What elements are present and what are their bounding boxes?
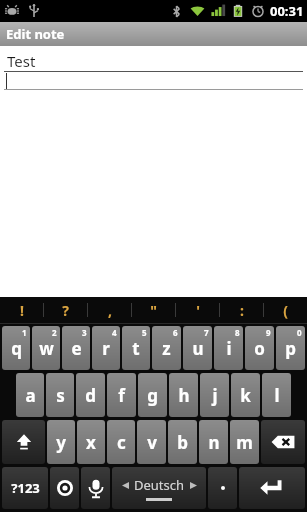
staticText: Test	[7, 51, 36, 71]
button[interactable]: n	[199, 420, 228, 464]
staticText: o	[254, 337, 265, 360]
button[interactable]: g	[138, 373, 167, 417]
staticText: Edit note	[6, 25, 65, 43]
staticText: p	[285, 337, 296, 360]
staticText: k	[240, 384, 251, 407]
staticText: :	[240, 301, 244, 320]
staticText: g	[147, 384, 158, 407]
staticText: '	[196, 301, 200, 320]
staticText: b	[177, 431, 188, 454]
button[interactable]: '	[176, 297, 219, 323]
staticText: ?	[62, 301, 69, 320]
staticText: ,	[108, 301, 112, 320]
staticText: "	[150, 301, 157, 320]
staticText: 9	[266, 327, 271, 338]
button[interactable]: o	[245, 326, 274, 370]
button[interactable]: u	[183, 326, 212, 370]
staticText: 2	[52, 327, 57, 338]
button[interactable]: m	[230, 420, 259, 464]
staticText: n	[208, 431, 220, 454]
staticText: m	[236, 431, 253, 454]
staticText: v	[147, 431, 157, 454]
staticText: t	[132, 337, 140, 360]
staticText: !	[20, 301, 24, 320]
staticText: i	[226, 337, 232, 360]
button[interactable]: z	[152, 326, 181, 370]
button[interactable]: w	[32, 326, 60, 370]
button[interactable]: Emoji	[50, 467, 79, 509]
button[interactable]: d	[76, 373, 105, 417]
button[interactable]: q	[2, 326, 30, 370]
staticText: a	[25, 384, 36, 407]
staticText: x	[86, 431, 96, 454]
staticText: z	[162, 337, 171, 360]
staticText: 0	[297, 327, 302, 338]
staticText: 3	[82, 327, 87, 338]
button[interactable]: Enter	[239, 467, 305, 509]
staticText: q	[11, 337, 22, 360]
button[interactable]: !	[0, 297, 43, 323]
staticText: d	[85, 384, 96, 407]
staticText: j	[212, 384, 218, 407]
button[interactable]: (	[264, 297, 307, 323]
button[interactable]: a	[16, 373, 44, 417]
button[interactable]: s	[46, 373, 74, 417]
button[interactable]: b	[168, 420, 197, 464]
button[interactable]: e	[62, 326, 90, 370]
button[interactable]: Period	[208, 467, 237, 509]
button[interactable]: j	[200, 373, 229, 417]
button[interactable]: h	[169, 373, 198, 417]
button[interactable]: k	[231, 373, 260, 417]
button[interactable]: Backspace	[261, 420, 305, 464]
staticText: y	[56, 431, 66, 454]
staticText: r	[102, 337, 110, 360]
staticText: l	[274, 384, 280, 407]
button[interactable]: :	[220, 297, 263, 323]
staticText: h	[178, 384, 190, 407]
staticText: (	[283, 301, 288, 320]
button[interactable]: Space, Deutsch	[112, 467, 206, 509]
staticText: 6	[173, 327, 178, 338]
staticText: e	[71, 337, 82, 360]
button[interactable]: f	[107, 373, 136, 417]
button[interactable]: x	[77, 420, 105, 464]
staticText: ?123	[11, 479, 40, 497]
staticText: w	[39, 337, 54, 360]
staticText: 4	[112, 327, 117, 338]
button[interactable]: v	[137, 420, 166, 464]
button[interactable]: i	[214, 326, 243, 370]
staticText: 8	[235, 327, 240, 338]
button[interactable]: "	[132, 297, 175, 323]
button[interactable]: c	[107, 420, 135, 464]
staticText: c	[117, 431, 126, 454]
staticText: 00:31	[270, 2, 304, 20]
staticText: f	[118, 384, 125, 407]
button[interactable]: t	[122, 326, 150, 370]
button[interactable]: y	[47, 420, 75, 464]
button[interactable]: l	[262, 373, 291, 417]
staticText: u	[192, 337, 204, 360]
button[interactable]: ?123	[2, 467, 48, 509]
staticText: 5	[142, 327, 147, 338]
button[interactable]: p	[276, 326, 305, 370]
staticText: Deutsch	[134, 476, 185, 494]
button[interactable]: Voice input	[81, 467, 110, 509]
button[interactable]: r	[92, 326, 120, 370]
button[interactable]: ?	[44, 297, 87, 323]
button[interactable]: ,	[88, 297, 131, 323]
staticText: s	[56, 384, 65, 407]
button[interactable]: Shift	[2, 420, 45, 464]
staticText: 7	[204, 327, 209, 338]
staticText: 1	[22, 327, 27, 338]
